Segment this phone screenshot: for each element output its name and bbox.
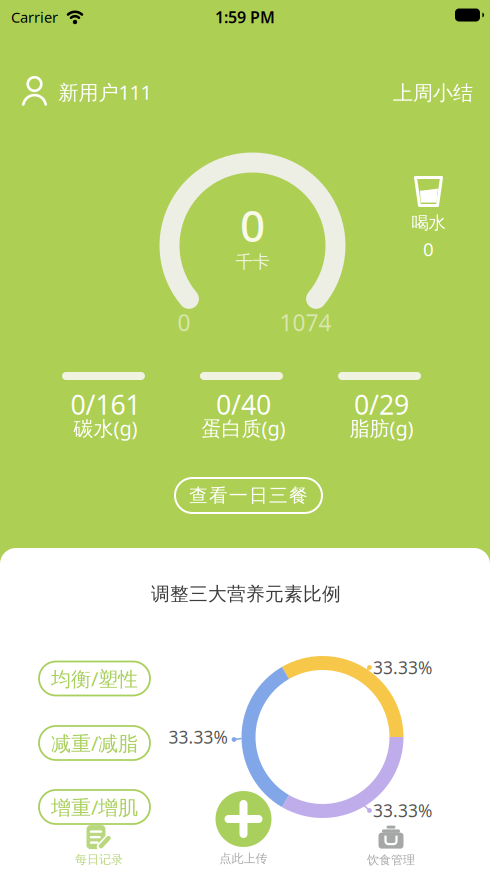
staticText: 均衡/塑性 [51, 665, 138, 692]
staticText: Carrier [11, 7, 58, 27]
staticText: 查看一日三餐 [189, 484, 308, 507]
staticText: 0/29 [354, 387, 409, 422]
staticText: 33.33% [373, 799, 432, 822]
button[interactable]: 饮食管理 [351, 824, 431, 868]
staticText: 蛋白质(g) [201, 415, 285, 441]
staticText: 点此上传 [219, 851, 267, 866]
staticText: 33.33% [168, 725, 227, 748]
staticText: 碳水(g) [73, 415, 137, 441]
staticText: 增重/增肌 [51, 794, 138, 820]
button[interactable]: 上周小结 [393, 81, 473, 105]
button[interactable]: 新用户111 [20, 74, 151, 110]
button[interactable]: 点此上传 [203, 782, 283, 866]
staticText: 0/40 [216, 387, 271, 422]
staticText: 1:59 PM [215, 6, 275, 28]
staticText: 减重/减脂 [51, 730, 138, 756]
button[interactable]: 喝水 [414, 176, 443, 260]
button[interactable]: 减重/减脂 [39, 726, 150, 760]
staticText: 新用户111 [58, 79, 151, 105]
staticText: 饮食管理 [367, 853, 415, 867]
staticText: 调整三大营养元素比例 [151, 582, 341, 605]
button[interactable]: 每日记录 [59, 824, 139, 868]
staticText: 千卡 [235, 251, 269, 273]
staticText: 0 [423, 237, 434, 261]
staticText: 0 [240, 196, 265, 254]
staticText: 上周小结 [393, 81, 473, 105]
staticText: 每日记录 [75, 852, 123, 867]
staticText: 1074 [279, 307, 331, 337]
staticText: 33.33% [373, 656, 432, 679]
staticText: 0/161 [70, 387, 140, 422]
staticText: 喝水 [411, 212, 445, 234]
button[interactable]: 均衡/塑性 [39, 661, 150, 695]
button[interactable]: 增重/增肌 [39, 790, 150, 824]
staticText: 0 [177, 307, 190, 337]
staticText: 脂肪(g) [349, 415, 413, 441]
button[interactable]: 查看一日三餐 [175, 478, 322, 513]
